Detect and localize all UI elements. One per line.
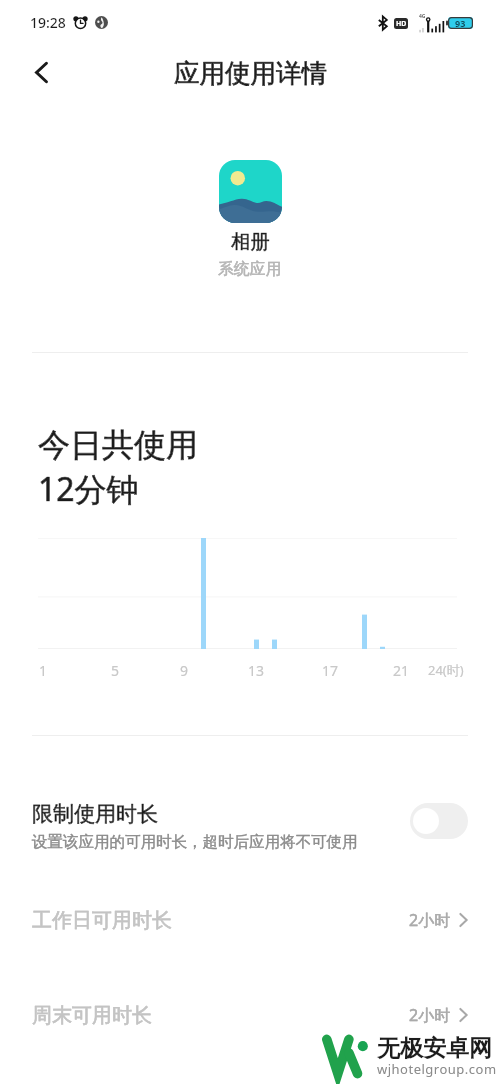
staticText: HD	[396, 19, 407, 29]
staticText: 今日共使用	[38, 425, 198, 465]
staticText: 19:28	[30, 13, 66, 32]
staticText: 今日共使用	[38, 425, 198, 465]
staticText: 2小时	[409, 909, 451, 931]
button[interactable]: 限制使用时长	[0, 777, 500, 865]
staticText: 工作日可用时长	[32, 908, 172, 933]
staticText: 5	[111, 661, 120, 680]
staticText: wjhotelgroup.com	[377, 1060, 497, 1078]
staticText: 13	[248, 661, 265, 680]
staticText: 12分钟	[38, 467, 139, 511]
staticText: 相册	[231, 229, 270, 254]
staticText: 应用使用详情	[174, 57, 327, 89]
button[interactable]: 周末可用时长	[0, 980, 500, 1050]
staticText: 2小时	[409, 1004, 451, 1026]
staticText: 工作日可用时长	[32, 908, 172, 933]
staticText: 17	[322, 661, 339, 680]
staticText: 无极安卓网	[377, 1034, 492, 1063]
staticText: 21	[393, 661, 410, 680]
staticText: 系统应用	[218, 259, 282, 279]
button[interactable]: Toggle usage limit	[410, 803, 468, 839]
staticText: 周末可用时长	[32, 1003, 152, 1028]
staticText: 12分钟	[38, 467, 139, 511]
staticText: 设置该应用的可用时长，超时后应用将不可使用	[32, 832, 358, 852]
staticText: 周末可用时长	[32, 1003, 152, 1028]
staticText: 24(时)	[428, 661, 464, 679]
staticText: 系统应用	[218, 259, 282, 279]
button[interactable]: Back	[24, 55, 58, 89]
button[interactable]: 工作日可用时长	[0, 885, 500, 955]
staticText: 2小时	[409, 909, 451, 931]
staticText: 93	[455, 17, 466, 29]
staticText: 限制使用时长	[32, 801, 158, 827]
staticText: 1	[39, 661, 48, 680]
staticText: 9	[180, 661, 189, 680]
staticText: 设置该应用的可用时长，超时后应用将不可使用	[32, 832, 358, 852]
staticText: 4G	[419, 13, 426, 20]
staticText: 应用使用详情	[174, 57, 327, 89]
staticText: 限制使用时长	[32, 801, 158, 827]
staticText: 相册	[231, 229, 270, 254]
staticText: 2小时	[409, 1004, 451, 1026]
